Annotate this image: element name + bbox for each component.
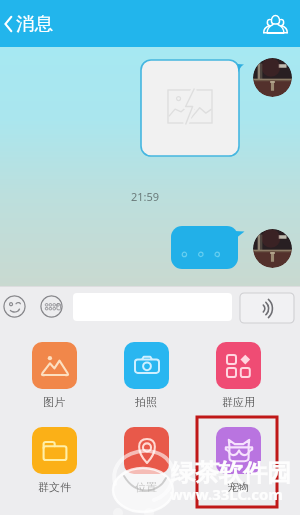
staticText: 拍照 (135, 395, 157, 409)
button[interactable]: 群应用 (192, 342, 284, 414)
button[interactable]: Voice message (240, 293, 294, 323)
button[interactable]: 消息 (2, 12, 53, 35)
staticText: 群文件 (38, 480, 71, 494)
button[interactable]: Avatar (253, 58, 292, 97)
button[interactable]: Avatar (253, 229, 292, 268)
staticText: 群应用 (222, 395, 255, 409)
button[interactable]: 位置 (100, 427, 192, 499)
staticText: 位置 (135, 480, 157, 494)
button[interactable]: 拍照 (100, 342, 192, 414)
staticText: 绿茶软件园 (171, 458, 291, 488)
button[interactable] (171, 226, 238, 269)
staticText: www.33LC.com (170, 484, 283, 504)
button[interactable]: Keyboard (40, 295, 63, 318)
staticText: 图片 (43, 395, 65, 409)
button[interactable]: 图片 (8, 342, 100, 414)
button[interactable]: Group members (258, 7, 292, 41)
staticText: 21:59 (131, 189, 160, 204)
button[interactable]: 群文件 (8, 427, 100, 499)
staticText: 宠物 (227, 480, 249, 494)
button[interactable]: Emoji (3, 295, 26, 318)
staticText: 消息 (16, 12, 53, 35)
button[interactable]: 宠物 (192, 427, 284, 499)
